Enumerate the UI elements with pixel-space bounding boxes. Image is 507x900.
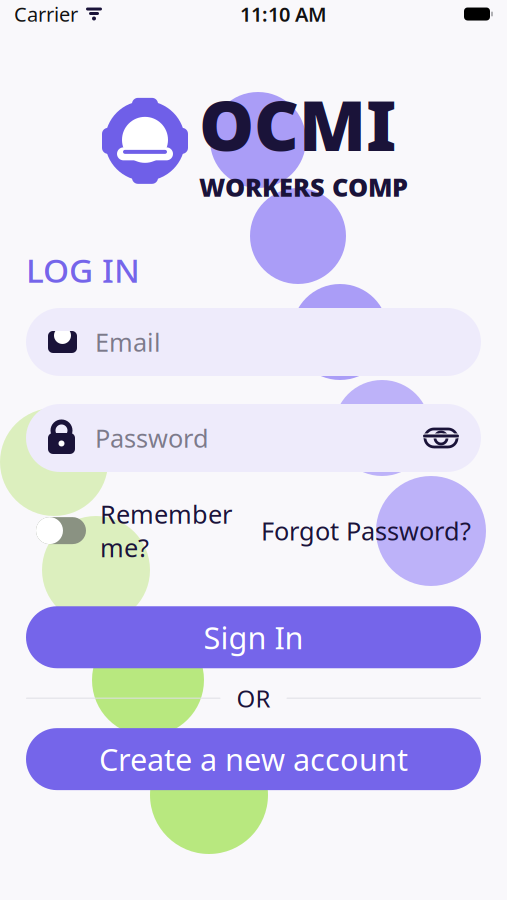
staticText: Sign In [203, 617, 303, 658]
staticText: Create a new account [99, 739, 408, 779]
button[interactable]: Create a new account [26, 728, 481, 790]
staticText: Forgot Password? [261, 514, 471, 547]
staticText: Remember me? [100, 497, 232, 564]
button[interactable]: Forgot Password? [261, 514, 471, 547]
staticText: Carrier [14, 1, 78, 27]
button[interactable]: Password [26, 404, 481, 472]
staticText: OCMI [199, 78, 397, 170]
staticText: OR [236, 682, 270, 714]
staticText: Password [95, 421, 209, 455]
staticText: Email [95, 325, 161, 359]
staticText: 11:10 AM [240, 1, 327, 27]
staticText: LOG IN [26, 248, 140, 292]
button[interactable]: Email [26, 308, 481, 376]
button[interactable]: Sign In [26, 606, 481, 668]
staticText: WORKERS COMP [199, 170, 408, 204]
button[interactable]: Remember me? [36, 497, 232, 564]
